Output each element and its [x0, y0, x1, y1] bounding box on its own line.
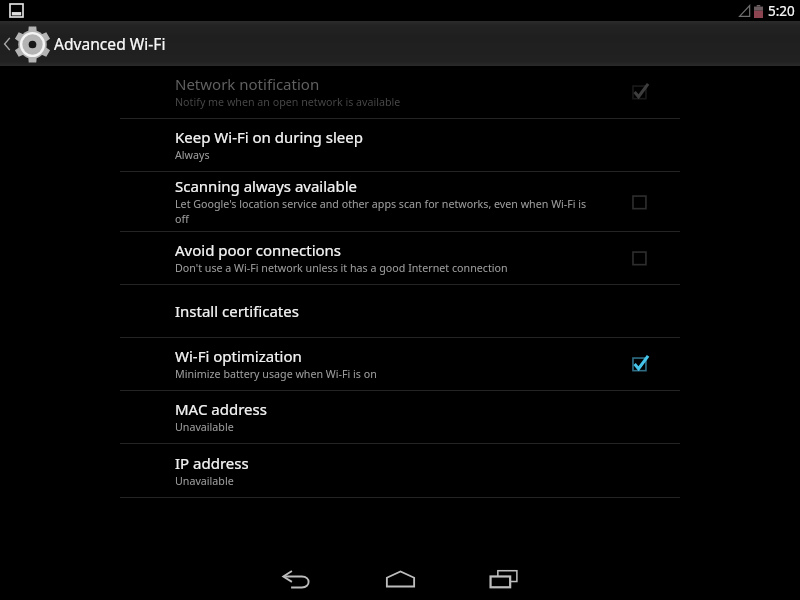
button[interactable]: Network notification: [120, 66, 680, 118]
staticText: Wi-Fi optimization: [175, 346, 302, 366]
button[interactable]: Avoid poor connections checkbox: [626, 244, 654, 272]
button[interactable]: IP address: [120, 444, 680, 497]
staticText: Minimize battery usage when Wi-Fi is on: [175, 367, 377, 382]
button[interactable]: Keep Wi-Fi on during sleep: [120, 119, 680, 171]
button[interactable]: Install certificates: [120, 285, 680, 337]
button[interactable]: Back: [272, 560, 320, 598]
staticText: Unavailable: [175, 474, 234, 489]
staticText: Scanning always available: [175, 176, 358, 196]
staticText: Network notification: [175, 74, 320, 94]
staticText: Avoid poor connections: [175, 240, 342, 260]
button[interactable]: Navigate up, Advanced Wi-Fi: [0, 21, 176, 66]
button[interactable]: Scanning always available checkbox: [626, 188, 654, 216]
button[interactable]: Wi-Fi optimization checkbox: [626, 350, 654, 378]
staticText: Notify me when an open network is availa…: [175, 95, 401, 110]
button[interactable]: Recent apps: [480, 560, 528, 598]
staticText: Always: [175, 148, 210, 163]
staticText: IP address: [175, 453, 249, 473]
staticText: Unavailable: [175, 420, 234, 435]
staticText: Install certificates: [175, 301, 299, 321]
staticText: Don't use a Wi-Fi network unless it has …: [175, 261, 508, 276]
button[interactable]: Wi-Fi optimization: [120, 338, 680, 390]
staticText: Let Google's location service and other …: [175, 197, 587, 227]
staticText: 5:20: [768, 2, 795, 20]
button[interactable]: MAC address: [120, 391, 680, 443]
staticText: Advanced Wi-Fi: [54, 33, 166, 54]
button[interactable]: Scanning always available: [120, 172, 680, 231]
staticText: MAC address: [175, 399, 267, 419]
staticText: Keep Wi-Fi on during sleep: [175, 127, 363, 147]
button[interactable]: Home: [376, 560, 424, 598]
button[interactable]: Avoid poor connections: [120, 232, 680, 284]
button[interactable]: Network notification checkbox: [626, 78, 654, 106]
